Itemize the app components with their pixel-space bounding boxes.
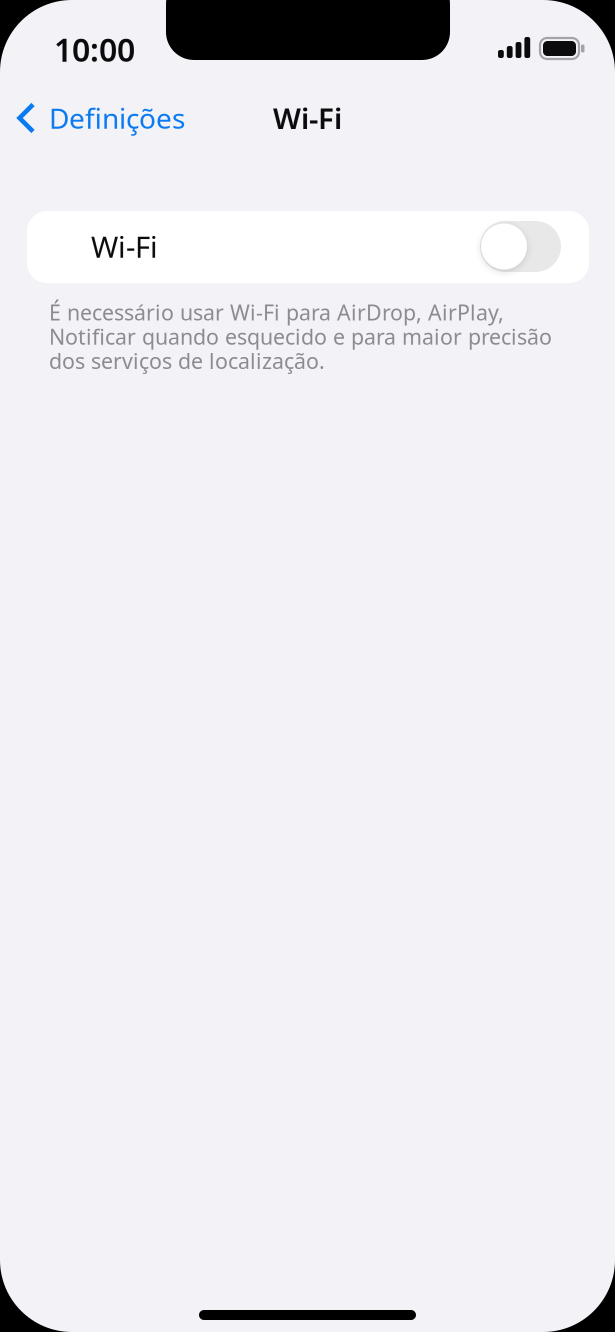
staticText: 10:00 xyxy=(54,28,135,70)
staticText: Wi-Fi xyxy=(273,98,342,137)
staticText: Wi-Fi xyxy=(91,227,158,266)
staticText: Definições xyxy=(49,99,185,137)
staticText: É necessário usar Wi-Fi para AirDrop, Ai… xyxy=(49,298,552,375)
button[interactable]: Definições xyxy=(0,92,188,144)
button[interactable]: Desligado xyxy=(480,221,561,272)
button[interactable]: Wi-Fi xyxy=(27,211,589,283)
